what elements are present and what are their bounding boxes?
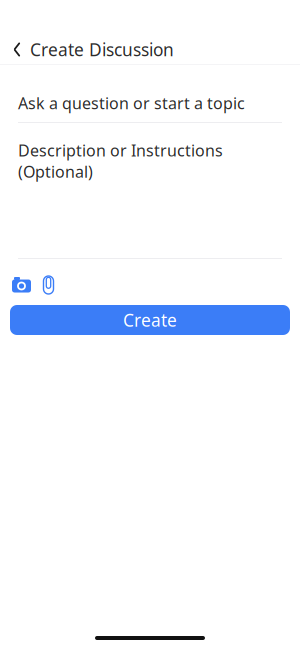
- staticText: Create: [123, 308, 177, 331]
- button[interactable]: Create: [10, 305, 290, 335]
- button[interactable]: Add photo: [12, 277, 31, 293]
- staticText: Create Discussion: [30, 38, 174, 61]
- staticText: Description or Instructions (Optional): [18, 140, 223, 182]
- staticText: Ask a question or start a topic: [18, 92, 245, 114]
- button[interactable]: Create Discussion: [0, 35, 300, 64]
- button[interactable]: Attach file: [41, 276, 56, 294]
